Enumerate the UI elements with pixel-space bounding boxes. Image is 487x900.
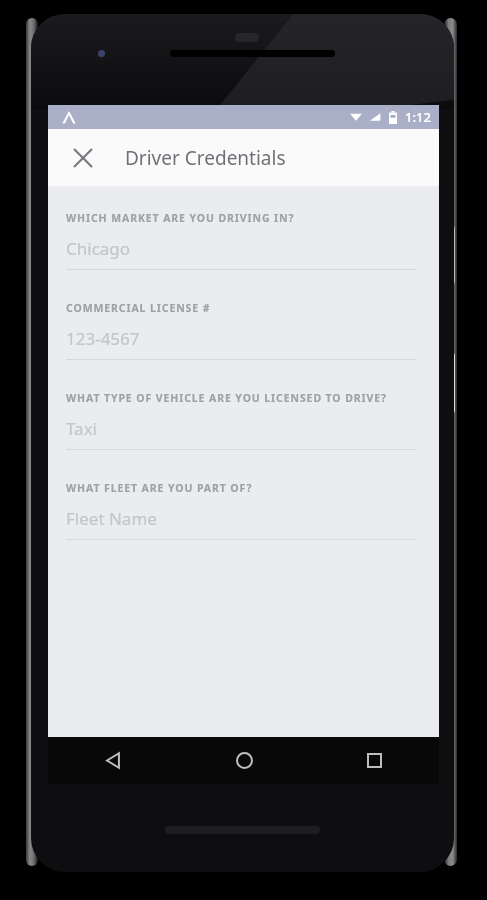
staticText: WHICH MARKET ARE YOU DRIVING IN? xyxy=(66,211,295,225)
button[interactable]: WHAT FLEET ARE YOU PART OF? xyxy=(48,469,439,559)
staticText: Taxi xyxy=(66,417,98,440)
button[interactable]: Back xyxy=(48,737,179,784)
button[interactable]: WHAT TYPE OF VEHICLE ARE YOU LICENSED TO… xyxy=(48,379,439,469)
staticText: WHAT TYPE OF VEHICLE ARE YOU LICENSED TO… xyxy=(66,391,387,405)
staticText: Driver Credentials xyxy=(125,145,286,171)
staticText: COMMERCIAL LICENSE # xyxy=(66,301,211,315)
button[interactable]: Home xyxy=(179,737,309,784)
staticText: Chicago xyxy=(66,237,131,260)
button[interactable]: COMMERCIAL LICENSE # xyxy=(48,289,439,379)
staticText: WHAT FLEET ARE YOU PART OF? xyxy=(66,481,253,495)
staticText: 123-4567 xyxy=(66,327,140,350)
staticText: Fleet Name xyxy=(66,507,157,530)
button[interactable]: Close xyxy=(62,137,104,179)
staticText: 1:12 xyxy=(405,108,431,126)
button[interactable]: Recent apps xyxy=(309,737,439,784)
button[interactable]: WHICH MARKET ARE YOU DRIVING IN? xyxy=(48,199,439,289)
